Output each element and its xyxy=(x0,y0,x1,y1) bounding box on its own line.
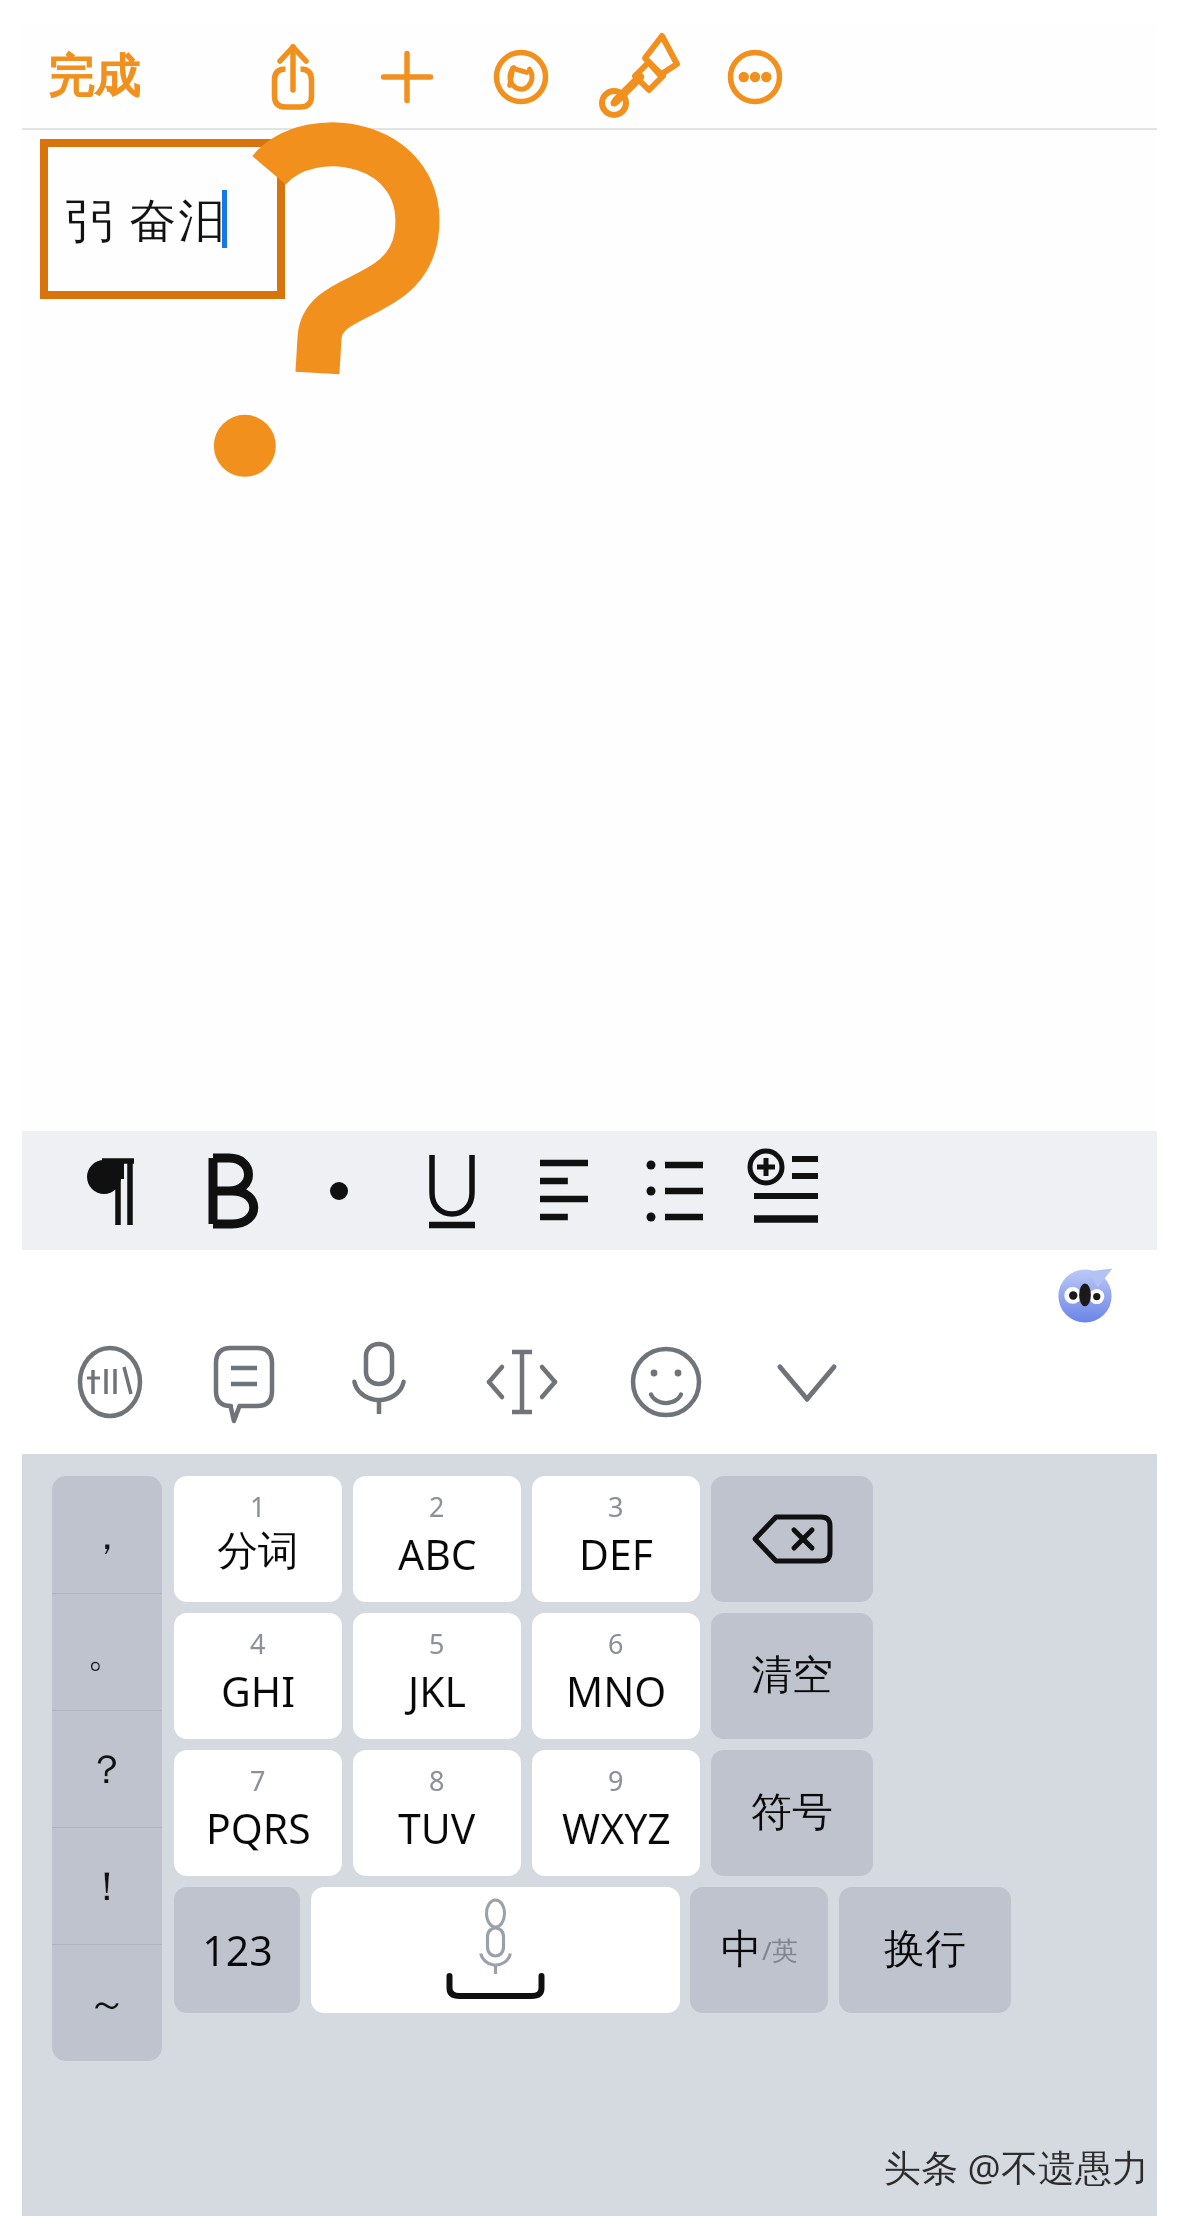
staticText: 2 xyxy=(429,1488,445,1525)
staticText: 6 xyxy=(608,1625,624,1662)
staticText: /英 xyxy=(762,1932,798,1968)
button[interactable]: List xyxy=(628,1143,724,1239)
button[interactable]: 完成 xyxy=(38,38,150,116)
staticText: 。 xyxy=(87,1627,127,1677)
button[interactable]: 4 xyxy=(174,1613,342,1739)
button[interactable]: Hide keyboard xyxy=(755,1330,859,1434)
staticText: JKL xyxy=(408,1663,467,1719)
button[interactable]: Share xyxy=(243,27,343,127)
staticText: MNO xyxy=(566,1663,667,1719)
button[interactable]: ～ xyxy=(52,1945,162,2061)
button[interactable]: Chinese English toggle xyxy=(690,1887,828,2013)
staticText: ～ xyxy=(87,1978,127,2028)
staticText: 7 xyxy=(250,1762,266,1799)
staticText: ？ xyxy=(87,1744,127,1794)
button[interactable]: ， xyxy=(52,1476,162,1593)
other: IME logo xyxy=(1057,1266,1113,1322)
button[interactable]: 9 xyxy=(532,1750,700,1876)
button[interactable]: Move cursor xyxy=(470,1330,574,1434)
staticText: 123 xyxy=(202,1922,273,1978)
staticText: PQRS xyxy=(206,1800,311,1856)
staticText: ， xyxy=(87,1510,127,1560)
button[interactable]: Insert xyxy=(740,1143,836,1239)
staticText: 清空 xyxy=(751,1650,833,1702)
button[interactable]: Emoji xyxy=(614,1330,718,1434)
staticText: TUV xyxy=(398,1800,476,1856)
staticText: 1 xyxy=(250,1488,266,1525)
button[interactable]: 1 xyxy=(174,1476,342,1602)
button[interactable]: 8 xyxy=(353,1750,521,1876)
button[interactable]: 3 xyxy=(532,1476,700,1602)
staticText: 5 xyxy=(429,1625,445,1662)
staticText: GHI xyxy=(221,1663,296,1719)
staticText: 换行 xyxy=(884,1924,966,1976)
button[interactable]: 清空 xyxy=(711,1613,873,1739)
staticText: WXYZ xyxy=(562,1800,671,1856)
button[interactable]: Input method xyxy=(58,1330,162,1434)
button[interactable]: ！ xyxy=(52,1828,162,1944)
button[interactable]: 123 xyxy=(174,1887,300,2013)
button[interactable]: More options xyxy=(705,27,805,127)
button[interactable]: 2 xyxy=(353,1476,521,1602)
button[interactable]: 。 xyxy=(52,1594,162,1710)
button[interactable]: Phrases xyxy=(192,1330,296,1434)
button[interactable]: Bullet xyxy=(291,1143,387,1239)
staticText: 完成 xyxy=(48,48,140,106)
staticText: 符号 xyxy=(751,1787,833,1839)
staticText: 头条 @不遗愚力 xyxy=(884,2141,1149,2192)
button[interactable]: Voice input xyxy=(327,1330,431,1434)
button[interactable]: Highlighter xyxy=(588,27,688,127)
button[interactable]: Underline xyxy=(404,1143,500,1239)
button[interactable]: Undo xyxy=(471,27,571,127)
button[interactable]: 换行 xyxy=(839,1887,1011,2013)
staticText: 中 xyxy=(721,1924,762,1976)
staticText: 4 xyxy=(250,1625,266,1662)
button[interactable]: 符号 xyxy=(711,1750,873,1876)
button[interactable]: 7 xyxy=(174,1750,342,1876)
staticText: 弜 奋汨 xyxy=(66,187,228,251)
staticText: DEF xyxy=(579,1526,654,1582)
button[interactable]: Delete xyxy=(711,1476,873,1602)
staticText: ！ xyxy=(87,1861,127,1911)
button[interactable]: Align xyxy=(516,1143,612,1239)
staticText: 8 xyxy=(429,1762,445,1799)
button[interactable]: 6 xyxy=(532,1613,700,1739)
staticText: 分词 xyxy=(217,1526,299,1578)
staticText: 3 xyxy=(608,1488,624,1525)
button[interactable]: ？ xyxy=(52,1711,162,1827)
button[interactable]: Space xyxy=(311,1887,680,2013)
button[interactable]: Bold xyxy=(179,1143,275,1239)
button[interactable]: 5 xyxy=(353,1613,521,1739)
button[interactable]: Add xyxy=(357,27,457,127)
staticText: ABC xyxy=(398,1526,477,1582)
staticText: 9 xyxy=(608,1762,624,1799)
button[interactable]: Paragraph xyxy=(67,1143,163,1239)
